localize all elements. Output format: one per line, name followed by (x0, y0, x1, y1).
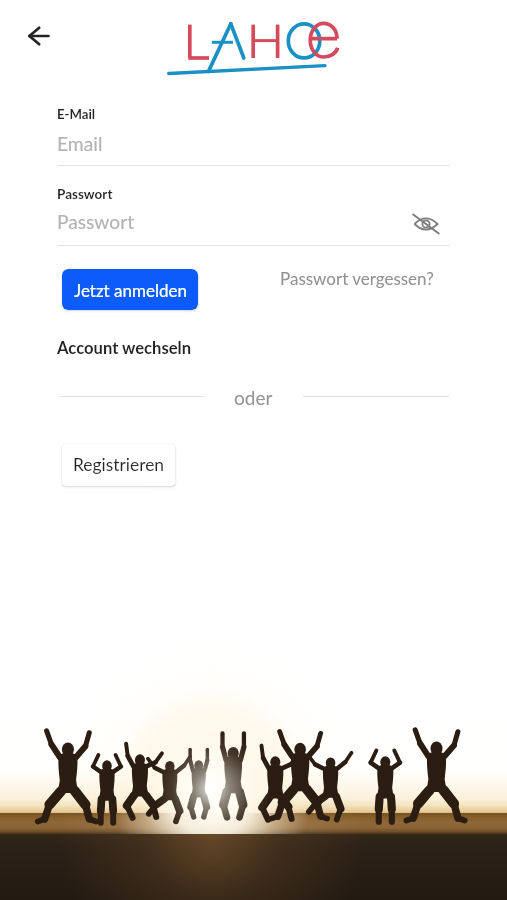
button[interactable]: Back (16, 13, 62, 59)
button[interactable]: Jetzt anmelden (62, 269, 198, 310)
staticText: Account wechseln (57, 338, 192, 358)
button[interactable]: Account wechseln (57, 338, 192, 358)
staticText: E-Mail (57, 106, 96, 122)
staticText: oder (234, 386, 273, 409)
staticText: Registrieren (73, 454, 165, 475)
staticText: Passwort vergessen? (280, 268, 434, 288)
staticText: Email (57, 132, 103, 155)
button[interactable]: Registrieren (62, 444, 175, 486)
staticText: Jetzt anmelden (74, 280, 187, 300)
button[interactable]: Passwort vergessen? (272, 257, 434, 299)
staticText: Passwort (57, 186, 113, 202)
staticText: Passwort (57, 210, 135, 233)
button[interactable]: Show password (409, 207, 443, 241)
